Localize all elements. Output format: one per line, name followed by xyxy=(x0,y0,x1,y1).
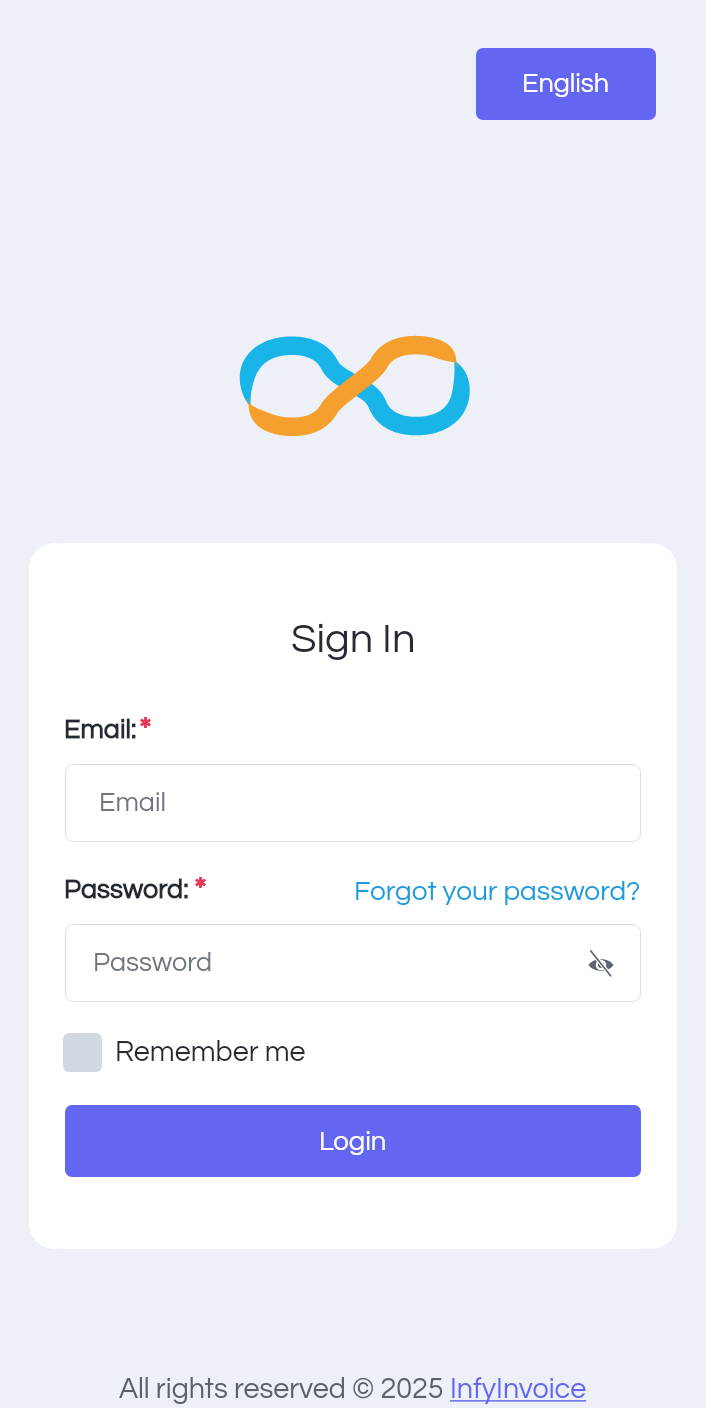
button[interactable]: Login xyxy=(65,1105,641,1177)
staticText: Sign In xyxy=(291,618,416,661)
button[interactable]: Email xyxy=(65,764,641,842)
button[interactable]: Forgot your password? xyxy=(341,870,641,912)
staticText: All rights reserved © 2025 xyxy=(119,1374,450,1404)
staticText: Login xyxy=(319,1127,387,1155)
button[interactable]: Show password xyxy=(577,940,624,987)
staticText: Password xyxy=(93,949,213,977)
button[interactable]: InfyInvoice xyxy=(450,1374,587,1404)
staticText: Email: xyxy=(64,716,137,744)
staticText: InfyInvoice xyxy=(450,1374,587,1404)
staticText: Forgot your password? xyxy=(354,877,641,906)
staticText: English xyxy=(522,70,610,98)
button[interactable]: English xyxy=(476,48,656,120)
staticText: Remember me xyxy=(115,1037,306,1067)
staticText: Email xyxy=(99,789,166,817)
button[interactable]: Remember me xyxy=(63,1026,306,1078)
button[interactable]: Password xyxy=(65,924,641,1002)
staticText: Password: xyxy=(64,876,189,904)
